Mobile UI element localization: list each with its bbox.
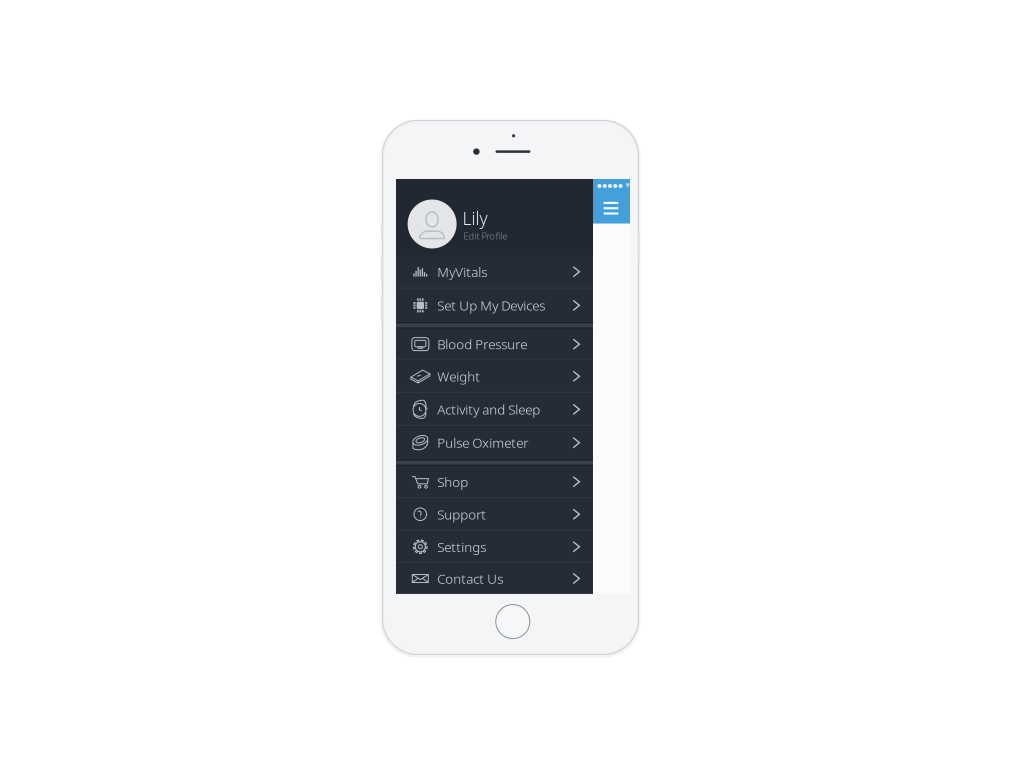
button[interactable]: Settings [396,530,593,563]
button[interactable]: MyVitals [396,255,593,288]
button[interactable]: Pulse Oximeter [396,426,593,460]
staticText: Activity and Sleep [437,400,540,418]
staticText: Set Up My Devices [437,296,545,314]
button[interactable]: Blood Pressure [396,329,593,360]
staticText: Contact Us [437,570,503,587]
staticText: Settings [437,538,486,556]
button[interactable]: Menu [593,179,630,223]
button[interactable]: Weight [396,360,593,393]
button[interactable]: Contact Us [396,563,593,594]
staticText: Pulse Oximeter [437,434,528,451]
staticText: Weight [437,367,480,385]
button[interactable]: Activity and Sleep [396,393,593,426]
button[interactable]: Shop [396,465,593,498]
staticText: Shop [437,473,468,491]
button[interactable]: Set Up My Devices [396,288,593,322]
staticText: Lily [462,207,487,230]
button[interactable]: Lily [396,179,593,255]
staticText: Blood Pressure [437,335,527,353]
button[interactable]: Support [396,498,593,530]
staticText: MyVitals [437,263,487,281]
staticText: Support [437,505,486,523]
staticText: Edit Profile [463,230,507,242]
